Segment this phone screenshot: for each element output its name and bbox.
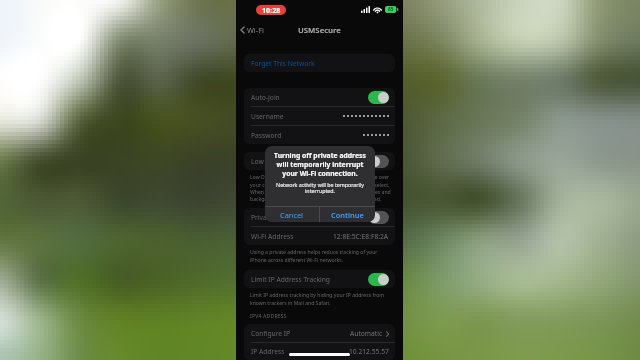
staticText: Auto-Join — [251, 93, 280, 102]
staticText: IPV4 ADDRESS — [250, 313, 287, 320]
staticText: Username — [251, 112, 284, 121]
button[interactable]: Recording indicator — [256, 5, 286, 15]
staticText: 12:8E:5C:E8:F8:2A — [333, 232, 389, 241]
staticText: Cancel — [280, 210, 304, 220]
staticText: Configure IP — [251, 329, 291, 338]
button[interactable]: Password — [244, 126, 395, 144]
staticText: Low Data Mode helps reduce your iPhone d… — [250, 174, 393, 202]
button[interactable]: Limit IP Address Tracking — [244, 270, 395, 288]
button[interactable]: Switch off — [368, 155, 389, 168]
button[interactable]: Switch on — [368, 273, 389, 286]
staticText: Network activity will be temporarily int… — [271, 181, 369, 195]
staticText: Wi-Fi — [247, 25, 264, 35]
button[interactable]: Wi-Fi — [240, 25, 264, 35]
button[interactable]: Configure IP — [244, 324, 395, 343]
staticText: Private Wi-Fi Address — [251, 213, 317, 222]
button[interactable]: Username — [244, 107, 395, 126]
staticText: Limit IP address tracking by hiding your… — [250, 292, 393, 306]
staticText: Low Data Mode — [251, 157, 300, 166]
staticText: Wi-Fi Address — [251, 232, 294, 241]
button[interactable]: Switch off — [368, 211, 389, 224]
button[interactable]: Wi-Fi Address — [244, 227, 395, 245]
button[interactable]: Cancel — [265, 207, 319, 222]
button[interactable]: Low Data Mode — [244, 152, 395, 170]
staticText: Automatic — [350, 329, 383, 338]
staticText: USMSecure — [298, 25, 341, 36]
button[interactable]: Private Wi-Fi Address — [244, 208, 395, 227]
staticText: Continue — [331, 210, 364, 220]
staticText: Turning off private address will tempora… — [269, 151, 371, 178]
button[interactable]: Switch on — [368, 91, 389, 104]
button[interactable]: Auto-Join — [244, 88, 395, 107]
staticText: Forget This Network — [251, 59, 315, 68]
staticText: 10:28 — [262, 5, 281, 15]
staticText: Using a private address helps reduce tra… — [250, 249, 393, 263]
staticText: Limit IP Address Tracking — [251, 275, 330, 284]
staticText: 85 — [388, 6, 394, 13]
staticText: 10.212.55.57 — [349, 347, 389, 356]
button[interactable]: IP Address — [244, 343, 395, 360]
button[interactable]: Forget This Network — [244, 54, 395, 72]
staticText: Password — [251, 131, 282, 140]
button[interactable]: Continue — [320, 207, 375, 222]
staticText: IP Address — [251, 347, 285, 356]
